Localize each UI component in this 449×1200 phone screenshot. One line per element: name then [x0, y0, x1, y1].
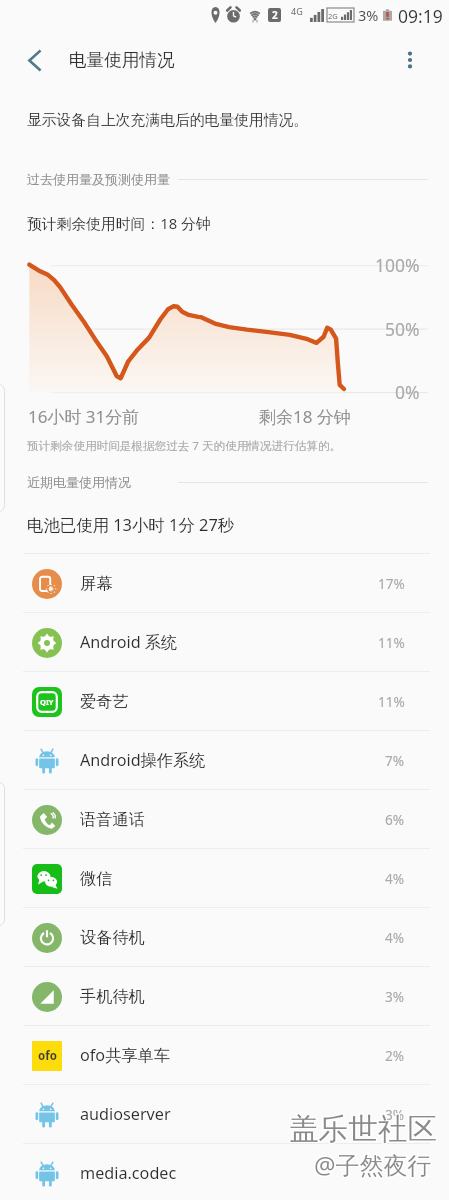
- staticText: 16小时 31分前: [28, 405, 140, 428]
- button[interactable]: audioserver: [0, 1085, 449, 1143]
- staticText: @子然夜行: [314, 1147, 432, 1180]
- staticText: 显示设备自上次充满电后的电量使用情况。: [27, 111, 309, 130]
- staticText: 电量使用情况: [69, 49, 175, 71]
- staticText: Android操作系统: [80, 749, 206, 771]
- button[interactable]: ofo: [0, 1026, 449, 1084]
- staticText: 50%: [385, 317, 420, 341]
- staticText: 盖乐世社区: [289, 1109, 437, 1146]
- staticText: 过去使用量及预测使用量: [27, 171, 170, 187]
- staticText: 微信: [80, 868, 113, 888]
- staticText: 0%: [395, 380, 420, 404]
- button[interactable]: 设备待机: [0, 908, 449, 966]
- staticText: 4%: [385, 928, 405, 947]
- staticText: 7%: [385, 751, 405, 770]
- button[interactable]: 返回: [12, 38, 56, 82]
- button[interactable]: Android 系统: [0, 613, 449, 671]
- button[interactable]: 屏幕: [0, 554, 449, 612]
- staticText: @子然夜行: [313, 1148, 431, 1181]
- staticText: 2%: [385, 1046, 405, 1065]
- button[interactable]: media.codec: [0, 1144, 449, 1200]
- staticText: ofo: [38, 1048, 57, 1064]
- staticText: 6%: [385, 810, 405, 829]
- staticText: 盖乐世社区: [290, 1111, 438, 1148]
- staticText: 剩余18 分钟: [259, 405, 351, 428]
- staticText: 屏幕: [80, 573, 113, 593]
- staticText: 电池已使用 13小时 1分 27秒: [27, 513, 235, 535]
- staticText: 2G: [328, 11, 338, 21]
- staticText: 盖乐世社区: [289, 1110, 437, 1147]
- staticText: QIY: [40, 697, 54, 707]
- staticText: 盖乐世社区: [290, 1110, 438, 1147]
- staticText: @子然夜行: [314, 1149, 432, 1182]
- staticText: @子然夜行: [314, 1148, 432, 1181]
- staticText: 3%: [385, 987, 405, 1006]
- button[interactable]: QIY: [0, 672, 449, 730]
- staticText: 17%: [378, 574, 405, 593]
- staticText: 3%: [358, 5, 379, 25]
- staticText: 预计剩余使用时间是根据您过去 7 天的使用情况进行估算的。: [27, 438, 342, 454]
- staticText: ofo共享单车: [80, 1044, 170, 1066]
- staticText: 盖乐世社区: [288, 1110, 436, 1147]
- staticText: 设备待机: [80, 927, 145, 947]
- staticText: 09:19: [398, 4, 443, 28]
- staticText: 近期电量使用情况: [27, 474, 131, 490]
- staticText: audioserver: [80, 1103, 171, 1125]
- staticText: 3%: [385, 1105, 405, 1124]
- staticText: @子然夜行: [313, 1149, 431, 1182]
- staticText: Android 系统: [80, 631, 178, 653]
- staticText: 手机待机: [80, 986, 145, 1006]
- staticText: media.codec: [80, 1162, 177, 1184]
- button[interactable]: 语音通话: [0, 790, 449, 848]
- button[interactable]: 更多选项: [388, 38, 432, 82]
- staticText: @子然夜行: [315, 1147, 433, 1180]
- staticText: 盖乐世社区: [290, 1109, 438, 1146]
- staticText: @子然夜行: [315, 1148, 433, 1181]
- staticText: 盖乐世社区: [288, 1109, 436, 1146]
- staticText: 11%: [378, 633, 405, 652]
- staticText: @子然夜行: [313, 1147, 431, 1180]
- button[interactable]: 手机待机: [0, 967, 449, 1025]
- staticText: 语音通话: [80, 809, 145, 829]
- staticText: 2: [272, 8, 278, 22]
- staticText: 11%: [378, 692, 405, 711]
- button[interactable]: 微信: [0, 849, 449, 907]
- staticText: 预计剩余使用时间：18 分钟: [27, 213, 211, 233]
- button[interactable]: Android操作系统: [0, 731, 449, 789]
- staticText: 盖乐世社区: [288, 1111, 436, 1148]
- staticText: 100%: [375, 253, 420, 277]
- staticText: 盖乐世社区: [289, 1111, 437, 1148]
- staticText: 4G: [291, 5, 303, 17]
- staticText: 爱奇艺: [80, 691, 129, 711]
- staticText: @子然夜行: [315, 1149, 433, 1182]
- staticText: 4%: [385, 869, 405, 888]
